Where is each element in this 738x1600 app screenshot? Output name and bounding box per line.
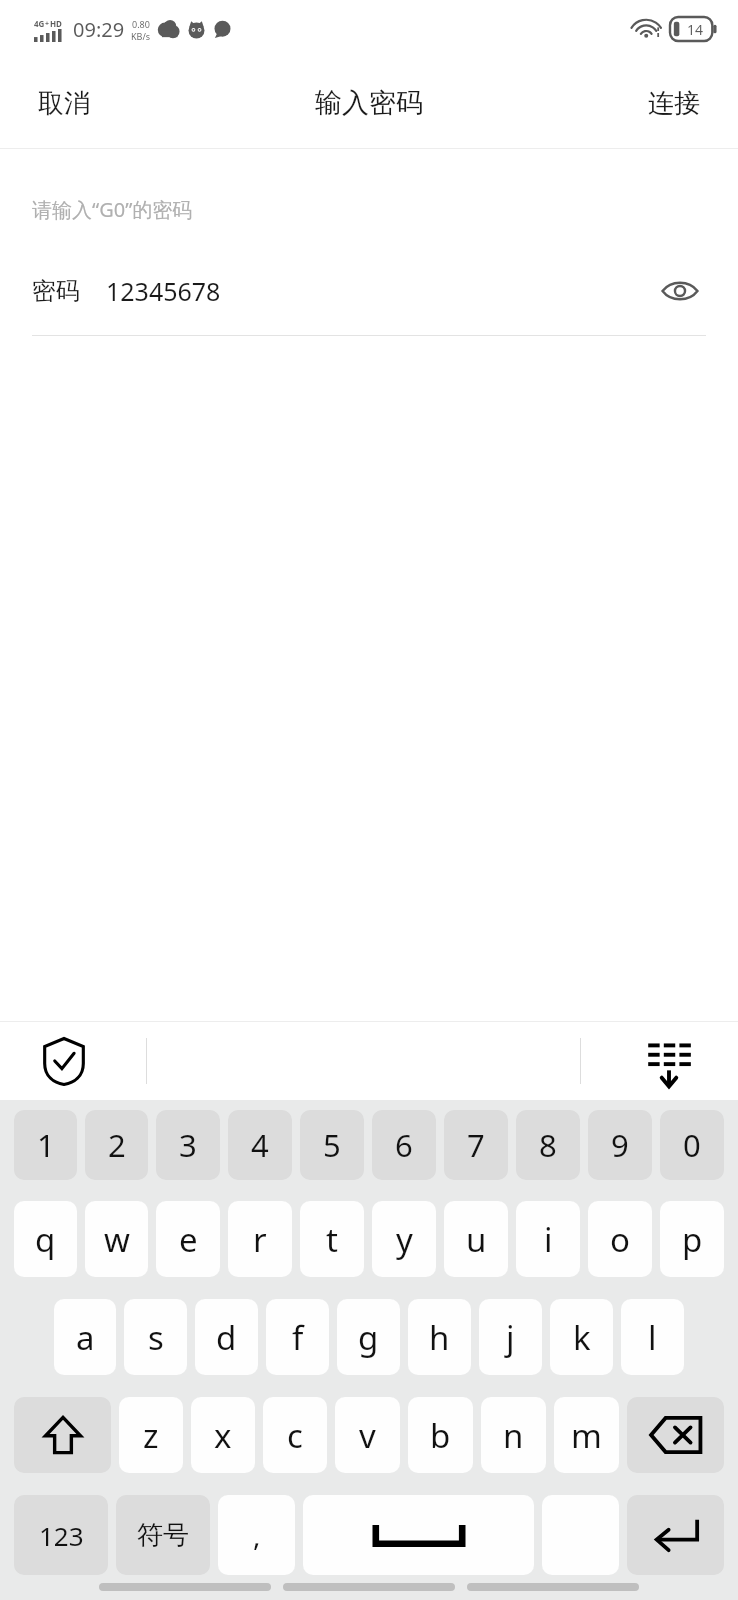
button[interactable]: c [263,1397,327,1473]
staticText: 4 [251,1124,269,1166]
button[interactable]: 符号 [116,1495,210,1575]
staticText: 2 [108,1124,126,1166]
staticText: u [466,1217,487,1262]
button[interactable]: 6 [372,1110,436,1180]
button[interactable]: l [621,1299,684,1375]
button[interactable]: 123 [14,1495,108,1575]
staticText: n [503,1413,524,1458]
staticText: f [292,1315,304,1360]
button[interactable]: 2 [85,1110,148,1180]
button[interactable]: , [218,1495,295,1575]
staticText: 4G [34,18,45,29]
staticText: k [573,1315,591,1360]
button[interactable]: i [516,1201,580,1277]
button[interactable]: 取消 [0,58,128,148]
button[interactable]: h [408,1299,471,1375]
staticText: 输入密码 [315,86,423,120]
button[interactable]: Shift [14,1397,111,1473]
button[interactable]: 7 [444,1110,508,1180]
button[interactable]: 1 [14,1110,77,1180]
staticText: 123 [39,1518,84,1553]
staticText: 0.80 [132,18,150,30]
staticText: 请输入“G0”的密码 [32,196,193,223]
staticText: 取消 [38,87,90,120]
staticText: + [45,19,50,29]
staticText: HD [50,18,62,29]
staticText: 9 [611,1124,629,1166]
staticText: t [326,1217,338,1262]
button[interactable]: s [124,1299,187,1375]
staticText: v [359,1413,376,1458]
button[interactable]: g [337,1299,400,1375]
button[interactable]: 5 [300,1110,364,1180]
staticText: p [682,1217,703,1262]
staticText: , [253,1516,261,1554]
staticText: 3 [179,1124,197,1166]
button[interactable]: Enter [627,1495,724,1575]
staticText: KB/s [131,30,151,42]
staticText: z [143,1413,159,1458]
staticText: l [648,1315,657,1360]
staticText: c [287,1413,303,1458]
staticText: 7 [467,1124,485,1166]
staticText: 5 [323,1124,341,1166]
button[interactable]: o [588,1201,652,1277]
staticText: o [610,1217,630,1262]
button[interactable]: q [14,1201,77,1277]
staticText: r [253,1217,267,1262]
button[interactable]: y [372,1201,436,1277]
button[interactable]: m [554,1397,619,1473]
staticText: 09:29 [73,16,125,43]
button[interactable]: b [408,1397,473,1473]
button[interactable]: x [191,1397,255,1473]
staticText: q [35,1217,56,1262]
staticText: 符号 [137,1519,189,1552]
button[interactable]: u [444,1201,508,1277]
button[interactable]: a [54,1299,116,1375]
staticText: 0 [683,1124,701,1166]
staticText: x [214,1413,232,1458]
button[interactable]: t [300,1201,364,1277]
button[interactable]: 8 [516,1110,580,1180]
button[interactable]: Secure input [34,1031,94,1091]
staticText: b [430,1413,451,1458]
staticText: i [544,1217,553,1262]
button[interactable]: 9 [588,1110,652,1180]
staticText: s [148,1315,164,1360]
button[interactable]: Backspace [627,1397,724,1473]
button[interactable]: z [119,1397,183,1473]
button[interactable]: j [479,1299,542,1375]
button[interactable]: p [660,1201,724,1277]
button[interactable]: n [481,1397,546,1473]
staticText: 12345678 [106,274,221,308]
button[interactable]: k [550,1299,613,1375]
staticText: w [104,1217,130,1262]
button[interactable]: f [266,1299,329,1375]
staticText: 14 [687,20,704,39]
button[interactable]: 连接 [610,58,738,148]
button[interactable]: 0 [660,1110,724,1180]
staticText: d [216,1315,237,1360]
button[interactable]: v [335,1397,400,1473]
staticText: m [571,1413,602,1458]
staticText: e [179,1217,198,1262]
button[interactable]: 3 [156,1110,220,1180]
staticText: h [429,1315,450,1360]
button[interactable]: Show password [652,263,708,319]
staticText: a [76,1315,95,1360]
staticText: y [396,1217,413,1262]
button[interactable]: w [85,1201,148,1277]
button[interactable]: Hide keyboard [638,1030,700,1092]
button[interactable]: Space [303,1495,534,1575]
staticText: 6 [395,1124,413,1166]
button[interactable]: r [228,1201,292,1277]
staticText: j [506,1315,515,1360]
button[interactable]: 4 [228,1110,292,1180]
button[interactable]: d [195,1299,258,1375]
staticText: g [358,1315,379,1360]
staticText: 连接 [648,87,700,120]
staticText: 1 [37,1124,55,1166]
button[interactable]: e [156,1201,220,1277]
staticText: 密码 [32,276,80,306]
